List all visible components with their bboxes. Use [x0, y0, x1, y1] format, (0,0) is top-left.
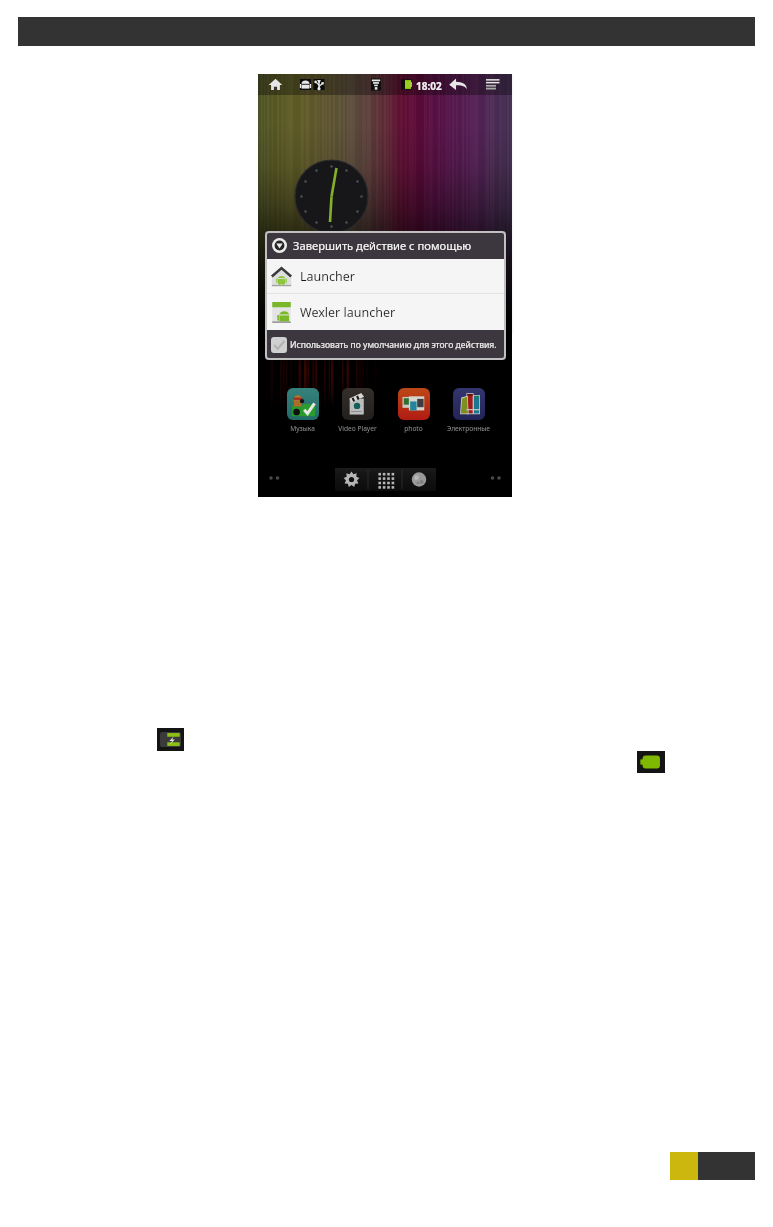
button[interactable]: Wexler launcher — [265, 294, 506, 330]
button[interactable]: Launcher — [265, 259, 506, 293]
button[interactable]: Battery charging — [157, 728, 184, 751]
button[interactable]: Battery full — [637, 751, 665, 773]
staticText: Video Player — [338, 424, 377, 433]
button[interactable]: Использовать по умолчанию для этого дейс… — [265, 330, 506, 360]
staticText: Завершить действие с помощью — [293, 238, 472, 253]
staticText: Launcher — [300, 268, 355, 285]
staticText: photo — [404, 424, 423, 433]
staticText: Использовать по умолчанию для этого дейс… — [290, 339, 497, 351]
button[interactable]: Музыка — [277, 388, 328, 433]
staticText: Электронные — [447, 424, 490, 433]
button[interactable]: photo — [388, 388, 439, 433]
button[interactable]: Электронные — [443, 388, 494, 433]
staticText: Музыка — [290, 424, 315, 433]
button[interactable]: Video Player — [332, 388, 383, 433]
staticText: Wexler launcher — [300, 304, 396, 321]
staticText: 18:02 — [416, 79, 442, 93]
